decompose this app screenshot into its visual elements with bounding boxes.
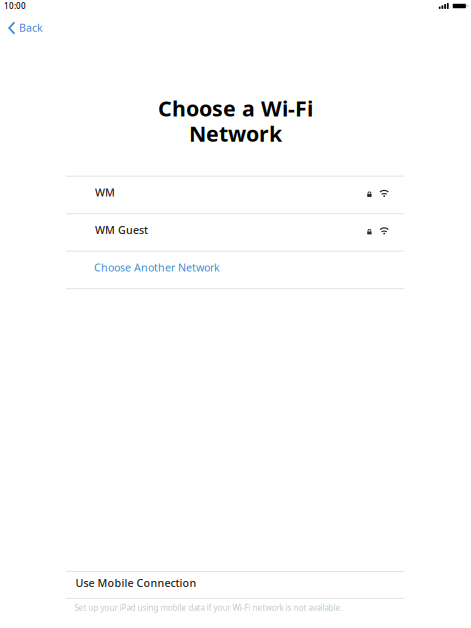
staticText: Choose a Wi-Fi bbox=[158, 94, 313, 122]
button[interactable]: WM bbox=[66, 177, 404, 213]
staticText: 10:00 bbox=[4, 1, 26, 11]
staticText: Set up your iPad using mobile data if yo… bbox=[75, 602, 343, 613]
staticText: WM bbox=[95, 185, 115, 199]
button[interactable]: WM Guest bbox=[66, 214, 404, 251]
staticText: Use Mobile Connection bbox=[75, 576, 196, 590]
button[interactable]: Back bbox=[0, 14, 51, 42]
staticText: Choose Another Network bbox=[94, 260, 220, 274]
button[interactable]: Choose Another Network bbox=[66, 252, 404, 288]
staticText: Network bbox=[189, 119, 282, 148]
button[interactable]: Use Mobile Connection bbox=[66, 572, 404, 598]
staticText: WM Guest bbox=[95, 223, 148, 237]
staticText: Back bbox=[19, 20, 43, 35]
